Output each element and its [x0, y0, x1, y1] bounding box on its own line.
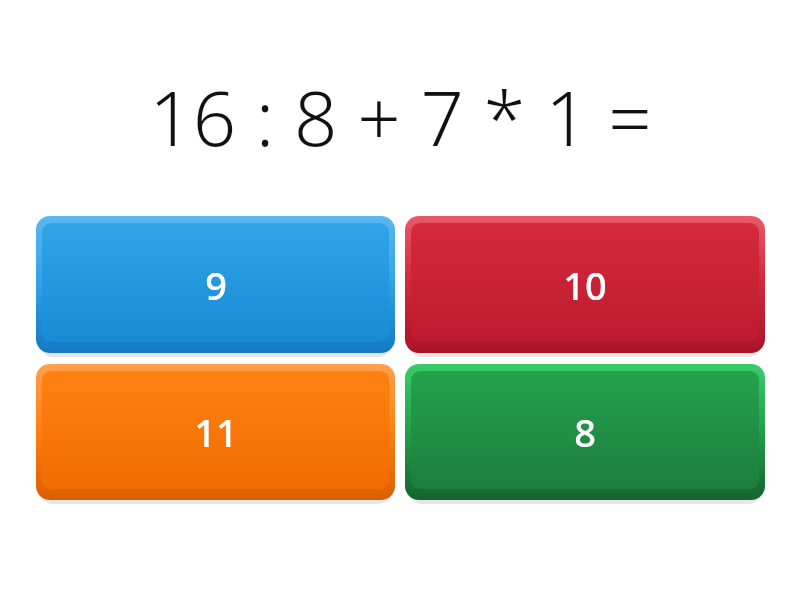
staticText: 8 — [574, 406, 596, 458]
staticText: 11 — [194, 406, 238, 458]
button[interactable]: Answer 9 — [36, 216, 395, 353]
button[interactable]: Answer 11 — [36, 364, 395, 500]
staticText: 16 : 8 + 7 * 1 = — [149, 65, 652, 169]
button[interactable]: Answer 8 — [405, 364, 765, 500]
button[interactable]: Answer 10 — [405, 216, 765, 353]
staticText: 9 — [205, 259, 227, 311]
staticText: 10 — [563, 259, 607, 311]
